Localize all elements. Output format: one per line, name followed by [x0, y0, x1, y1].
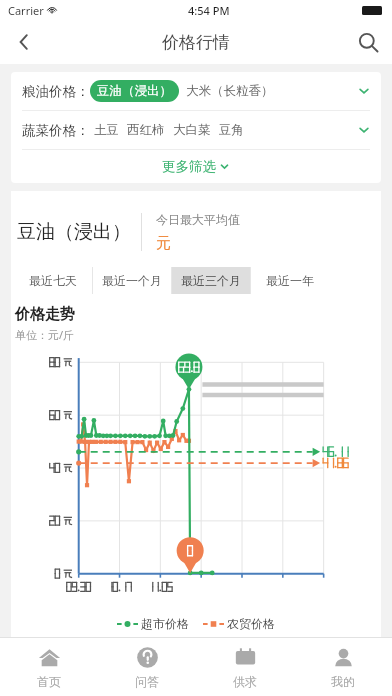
button[interactable]: 西红柿	[123, 122, 169, 138]
staticText: 最近七天	[29, 273, 77, 288]
staticText: 大白菜	[173, 122, 211, 138]
staticText: 粮油价格：	[22, 83, 90, 100]
button[interactable]: 最近一个月	[93, 267, 171, 294]
button[interactable]: 豆角	[215, 122, 248, 138]
button[interactable]: 更多筛选	[11, 150, 381, 183]
button[interactable]: Expand grain prices	[347, 72, 381, 110]
button[interactable]: 超市价格	[117, 616, 189, 631]
staticText: 最近一个月	[102, 273, 162, 288]
staticText: 更多筛选	[162, 158, 216, 175]
staticText: 我的	[331, 674, 355, 689]
button[interactable]: Back	[0, 20, 48, 64]
staticText: 问答	[135, 674, 159, 689]
button[interactable]: 最近三个月	[172, 267, 250, 294]
button[interactable]: 我的	[294, 638, 392, 696]
staticText: 元	[156, 234, 171, 253]
staticText: 豆油（浸出）	[17, 220, 131, 244]
button[interactable]: Expand vegetable prices	[347, 111, 381, 149]
button[interactable]: 农贸价格	[203, 616, 275, 631]
staticText: 最近一年	[266, 273, 314, 288]
staticText: Carrier	[8, 3, 44, 18]
staticText: 价格行情	[162, 32, 230, 53]
button[interactable]: 大白菜	[169, 122, 215, 138]
button[interactable]: 首页	[0, 638, 98, 696]
staticText: 单位：元/斤	[15, 327, 75, 342]
staticText: 首页	[37, 674, 61, 689]
staticText: 今日最大平均值	[156, 212, 240, 227]
button[interactable]: 豆油（浸出）	[97, 83, 172, 99]
button[interactable]: Search	[344, 20, 392, 64]
staticText: 蔬菜价格：	[22, 122, 90, 139]
button[interactable]: 最近七天	[13, 267, 92, 294]
button[interactable]: 供求	[196, 638, 294, 696]
button[interactable]: 粮油价格：	[11, 72, 381, 110]
staticText: 西红柿	[127, 122, 165, 138]
staticText: 土豆	[94, 122, 119, 138]
button[interactable]: 大米（长粒香）	[186, 83, 274, 99]
button[interactable]: 问答	[98, 638, 196, 696]
staticText: 农贸价格	[227, 616, 275, 631]
button[interactable]: 最近一年	[251, 267, 329, 294]
staticText: 豆角	[219, 122, 244, 138]
button[interactable]: 蔬菜价格：	[11, 111, 381, 149]
staticText: 超市价格	[141, 616, 189, 631]
staticText: 大米（长粒香）	[186, 83, 274, 99]
staticText: 供求	[233, 674, 257, 689]
button[interactable]: 土豆	[90, 122, 123, 138]
staticText: 豆油（浸出）	[97, 83, 172, 99]
staticText: 最近三个月	[181, 273, 241, 288]
staticText: 价格走势	[15, 305, 75, 324]
staticText: 4:54 PM	[188, 3, 230, 18]
